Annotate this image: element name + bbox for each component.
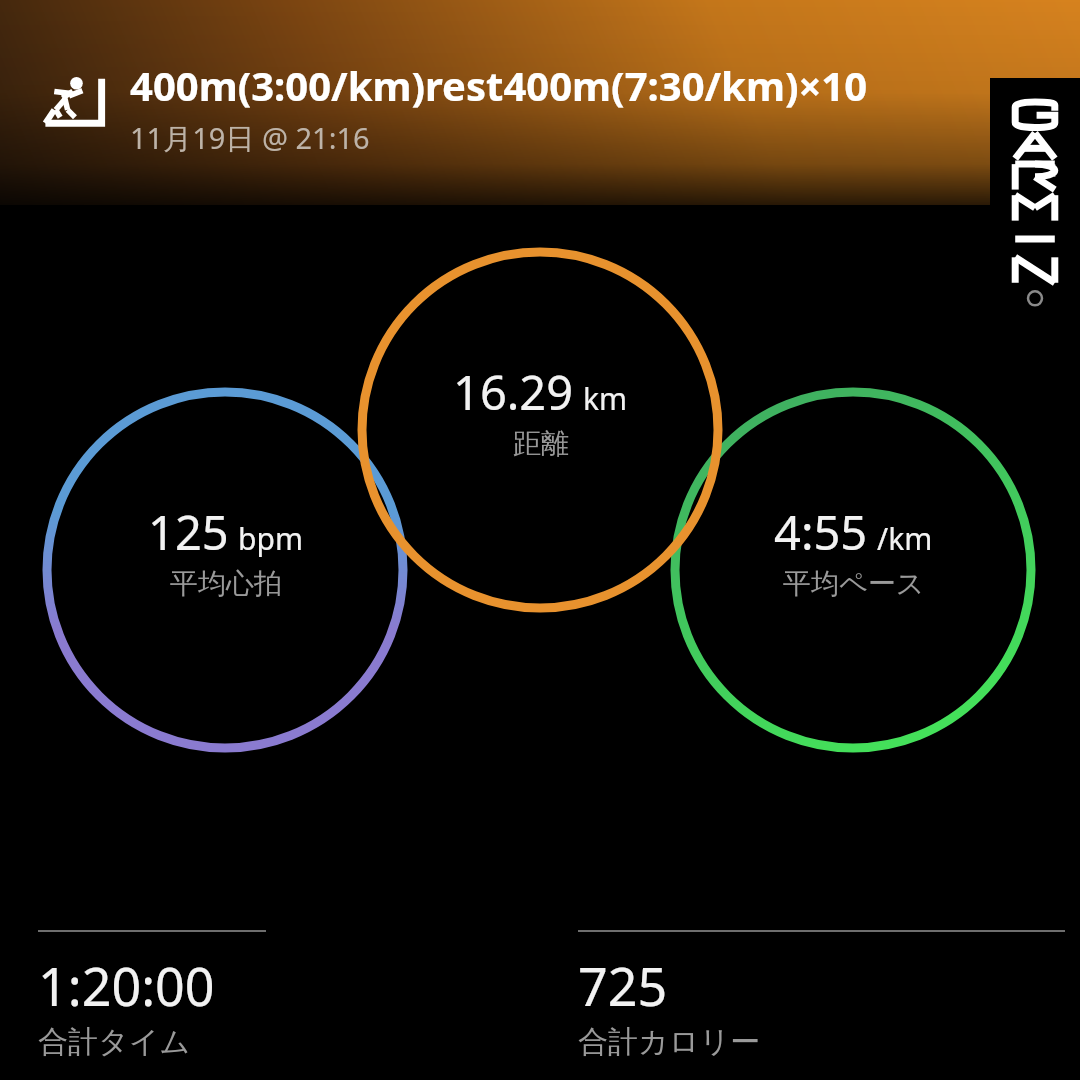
staticText: 平均心拍: [170, 566, 282, 601]
other: Garmin: [990, 78, 1080, 310]
button[interactable]: 1:20:00: [0, 930, 540, 1061]
staticText: 725: [578, 950, 668, 1021]
button[interactable]: Treadmill running activity: [38, 64, 112, 138]
button[interactable]: 16.29: [362, 360, 718, 500]
staticText: 1:20:00: [38, 950, 215, 1021]
staticText: /km: [877, 518, 933, 559]
staticText: 合計カロリー: [578, 1023, 761, 1061]
staticText: 合計タイム: [38, 1023, 191, 1061]
staticText: 125: [148, 500, 229, 564]
button[interactable]: 4:55: [675, 500, 1031, 640]
staticText: km: [583, 378, 628, 419]
staticText: 4:55: [774, 500, 868, 564]
staticText: 11月19日 @ 21:16: [130, 118, 370, 158]
staticText: 距離: [513, 426, 569, 461]
button[interactable]: 125: [47, 500, 403, 640]
staticText: 400m(3:00/km)rest400m(7:30/km)×10: [130, 58, 868, 112]
button[interactable]: 725: [540, 930, 1080, 1061]
staticText: bpm: [238, 518, 303, 559]
staticText: 平均ペース: [783, 566, 925, 601]
staticText: 16.29: [453, 360, 574, 424]
